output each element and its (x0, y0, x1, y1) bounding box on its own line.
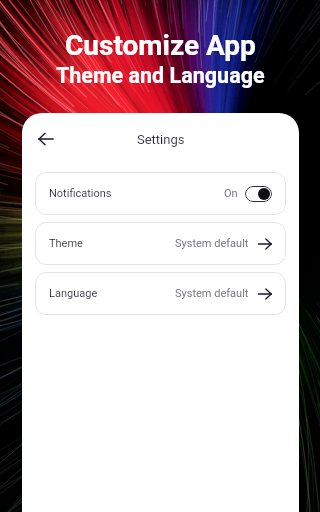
staticText: System default (175, 237, 249, 250)
staticText: Theme (49, 237, 83, 250)
staticText: On (224, 187, 238, 200)
button[interactable]: Back (31, 124, 61, 154)
button[interactable]: Theme (35, 222, 286, 265)
staticText: Customize App (65, 29, 256, 62)
staticText: System default (175, 287, 249, 300)
staticText: Language (49, 287, 98, 300)
button[interactable]: Notifications toggle (245, 186, 272, 202)
staticText: Theme and Language (56, 63, 265, 88)
staticText: Settings (137, 132, 185, 147)
button[interactable]: Language (35, 272, 286, 315)
staticText: Notifications (49, 187, 112, 200)
button[interactable]: Notifications (35, 172, 286, 215)
